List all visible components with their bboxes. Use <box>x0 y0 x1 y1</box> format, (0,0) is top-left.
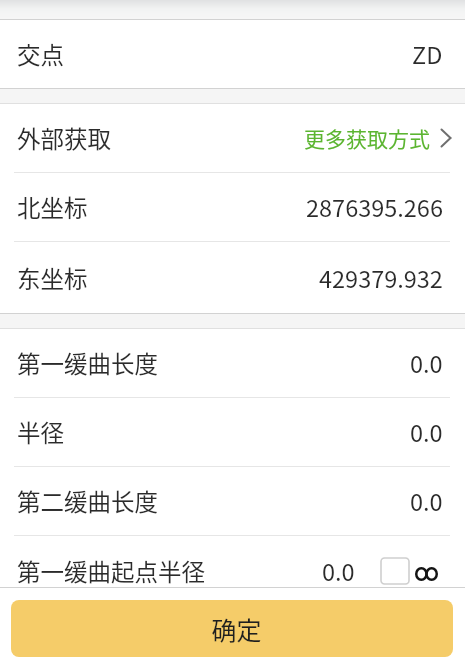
staticText: 半径 <box>17 415 64 449</box>
staticText: 第二缓曲长度 <box>17 484 158 518</box>
staticText: 0.0 <box>410 484 443 518</box>
staticText: 北坐标 <box>17 190 88 224</box>
staticText: 确定 <box>211 611 262 647</box>
staticText: ZD <box>412 37 443 71</box>
staticText: 0.0 <box>410 415 443 449</box>
staticText: 外部获取 <box>17 121 111 155</box>
staticText: 东坐标 <box>17 261 88 295</box>
button[interactable]: 北坐标 <box>0 173 465 241</box>
button[interactable]: 第一缓曲长度 <box>0 329 465 397</box>
button[interactable]: 第一缓曲起点半径 <box>0 536 465 587</box>
staticText: 更多获取方式 <box>304 123 430 153</box>
staticText: 第一缓曲起点半径 <box>17 554 205 587</box>
button[interactable]: 东坐标 <box>0 242 465 313</box>
button[interactable]: 确定 <box>11 600 453 657</box>
button[interactable]: 外部获取 <box>0 104 465 172</box>
staticText: 429379.932 <box>319 261 443 295</box>
button[interactable]: 交点 <box>0 20 465 88</box>
staticText: 第一缓曲长度 <box>17 346 158 380</box>
button[interactable]: Infinite radius <box>381 558 409 584</box>
button[interactable]: 半径 <box>0 398 465 466</box>
staticText: 2876395.266 <box>306 190 443 224</box>
staticText: 0.0 <box>322 554 355 587</box>
staticText: 0.0 <box>410 346 443 380</box>
other: Infinity <box>415 567 438 581</box>
button[interactable]: 第二缓曲长度 <box>0 467 465 535</box>
staticText: 交点 <box>17 37 64 71</box>
